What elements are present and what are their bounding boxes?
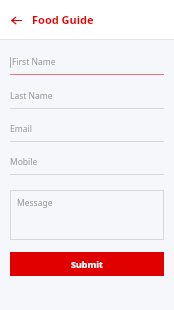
staticText: Message <box>17 197 53 209</box>
staticText: Email <box>10 123 32 135</box>
staticText: Submit <box>71 258 103 270</box>
staticText: Mobile <box>10 156 38 168</box>
button[interactable]: Mobile <box>10 154 164 175</box>
staticText: Last Name <box>10 90 53 102</box>
button[interactable]: Email <box>10 121 164 142</box>
button[interactable]: First Name <box>10 54 164 75</box>
button[interactable]: Message <box>10 190 164 240</box>
staticText: Food Guide <box>32 12 94 27</box>
button[interactable]: Submit <box>10 252 164 276</box>
button[interactable]: Back <box>7 11 25 29</box>
staticText: First Name <box>12 56 56 68</box>
button[interactable]: Last Name <box>10 88 164 109</box>
